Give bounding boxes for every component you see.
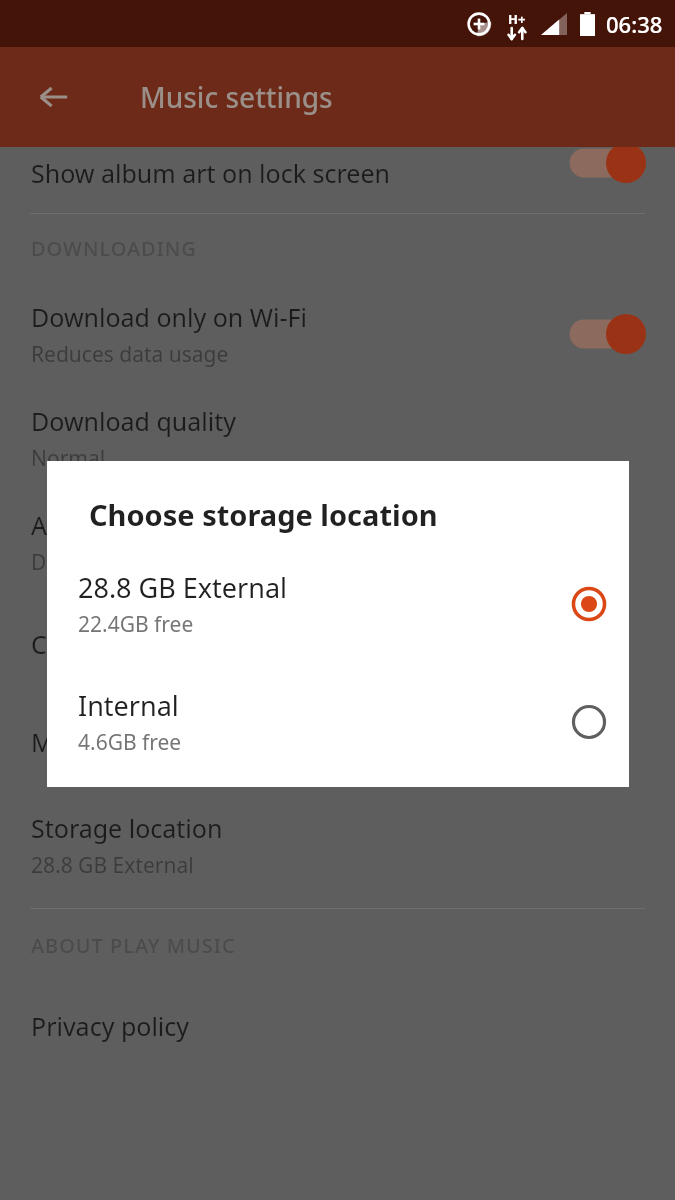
staticText: 28.8 GB External	[78, 569, 288, 606]
button[interactable]: Audio quality	[0, 490, 675, 594]
staticText: Storage location	[31, 811, 223, 845]
staticText: Internal	[78, 687, 179, 724]
staticText: 22.4GB free	[78, 610, 194, 639]
button[interactable]: Back	[22, 65, 86, 129]
staticText: Download quality	[31, 404, 236, 438]
staticText: DOWNLOADING	[31, 235, 197, 262]
staticText: Music settings	[140, 78, 333, 116]
staticText: Download only on Wi-Fi	[31, 300, 307, 334]
staticText: Show album art on lock screen	[31, 156, 390, 190]
staticText: 06:38	[606, 9, 663, 39]
button[interactable]: Download quality	[0, 386, 675, 490]
staticText: Reduces data usage	[31, 340, 229, 369]
staticText: H+	[508, 10, 526, 28]
staticText: Choose storage location	[89, 495, 438, 534]
staticText: Privacy policy	[31, 1009, 190, 1043]
button[interactable]: Manage downloads	[0, 694, 675, 790]
button[interactable]: 28.8 GB External	[47, 558, 629, 650]
button[interactable]: Download only on Wi-Fi	[0, 282, 675, 386]
staticText: Audio quality	[31, 508, 186, 542]
staticText: Normal	[31, 444, 106, 473]
button[interactable]: Storage location	[0, 790, 675, 900]
button[interactable]: Internal	[47, 676, 629, 768]
staticText: Manage downloads	[31, 725, 262, 759]
button[interactable]: Privacy policy	[0, 981, 675, 1071]
button[interactable]: Cache	[0, 594, 675, 694]
staticText: ABOUT PLAY MUSIC	[31, 932, 236, 959]
staticText: 4.6GB free	[78, 728, 182, 757]
staticText: 28.8 GB External	[31, 851, 194, 880]
staticText: Cache	[31, 627, 103, 661]
staticText: Depends on connection	[31, 548, 265, 577]
